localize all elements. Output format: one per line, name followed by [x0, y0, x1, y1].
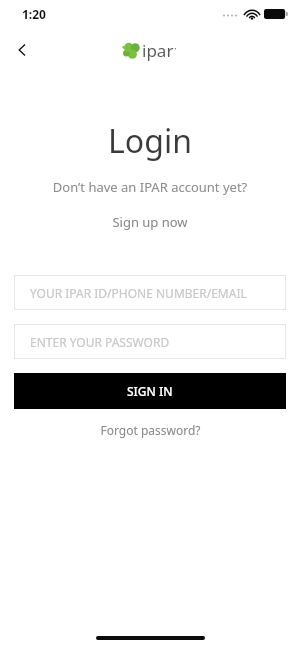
staticText: Don’t have an IPAR account yet? [0, 178, 300, 196]
button[interactable]: Back [0, 28, 44, 72]
button[interactable]: Forgot password? [0, 418, 300, 442]
staticText: ipar [142, 39, 174, 62]
staticText: YOUR IPAR ID/PHONE NUMBER/EMAIL [30, 285, 247, 301]
button[interactable]: SIGN IN [14, 373, 286, 409]
staticText: SIGN IN [127, 383, 173, 399]
staticText: ENTER YOUR PASSWORD [30, 334, 170, 350]
staticText: Forgot password? [100, 422, 201, 438]
button[interactable]: ENTER YOUR PASSWORD [14, 324, 286, 359]
button[interactable]: YOUR IPAR ID/PHONE NUMBER/EMAIL [14, 275, 286, 310]
staticText: Login [0, 119, 300, 163]
staticText: · [174, 40, 177, 55]
button[interactable]: Sign up now [0, 209, 300, 235]
staticText: Sign up now [112, 213, 188, 231]
staticText: 1:20 [22, 6, 46, 22]
